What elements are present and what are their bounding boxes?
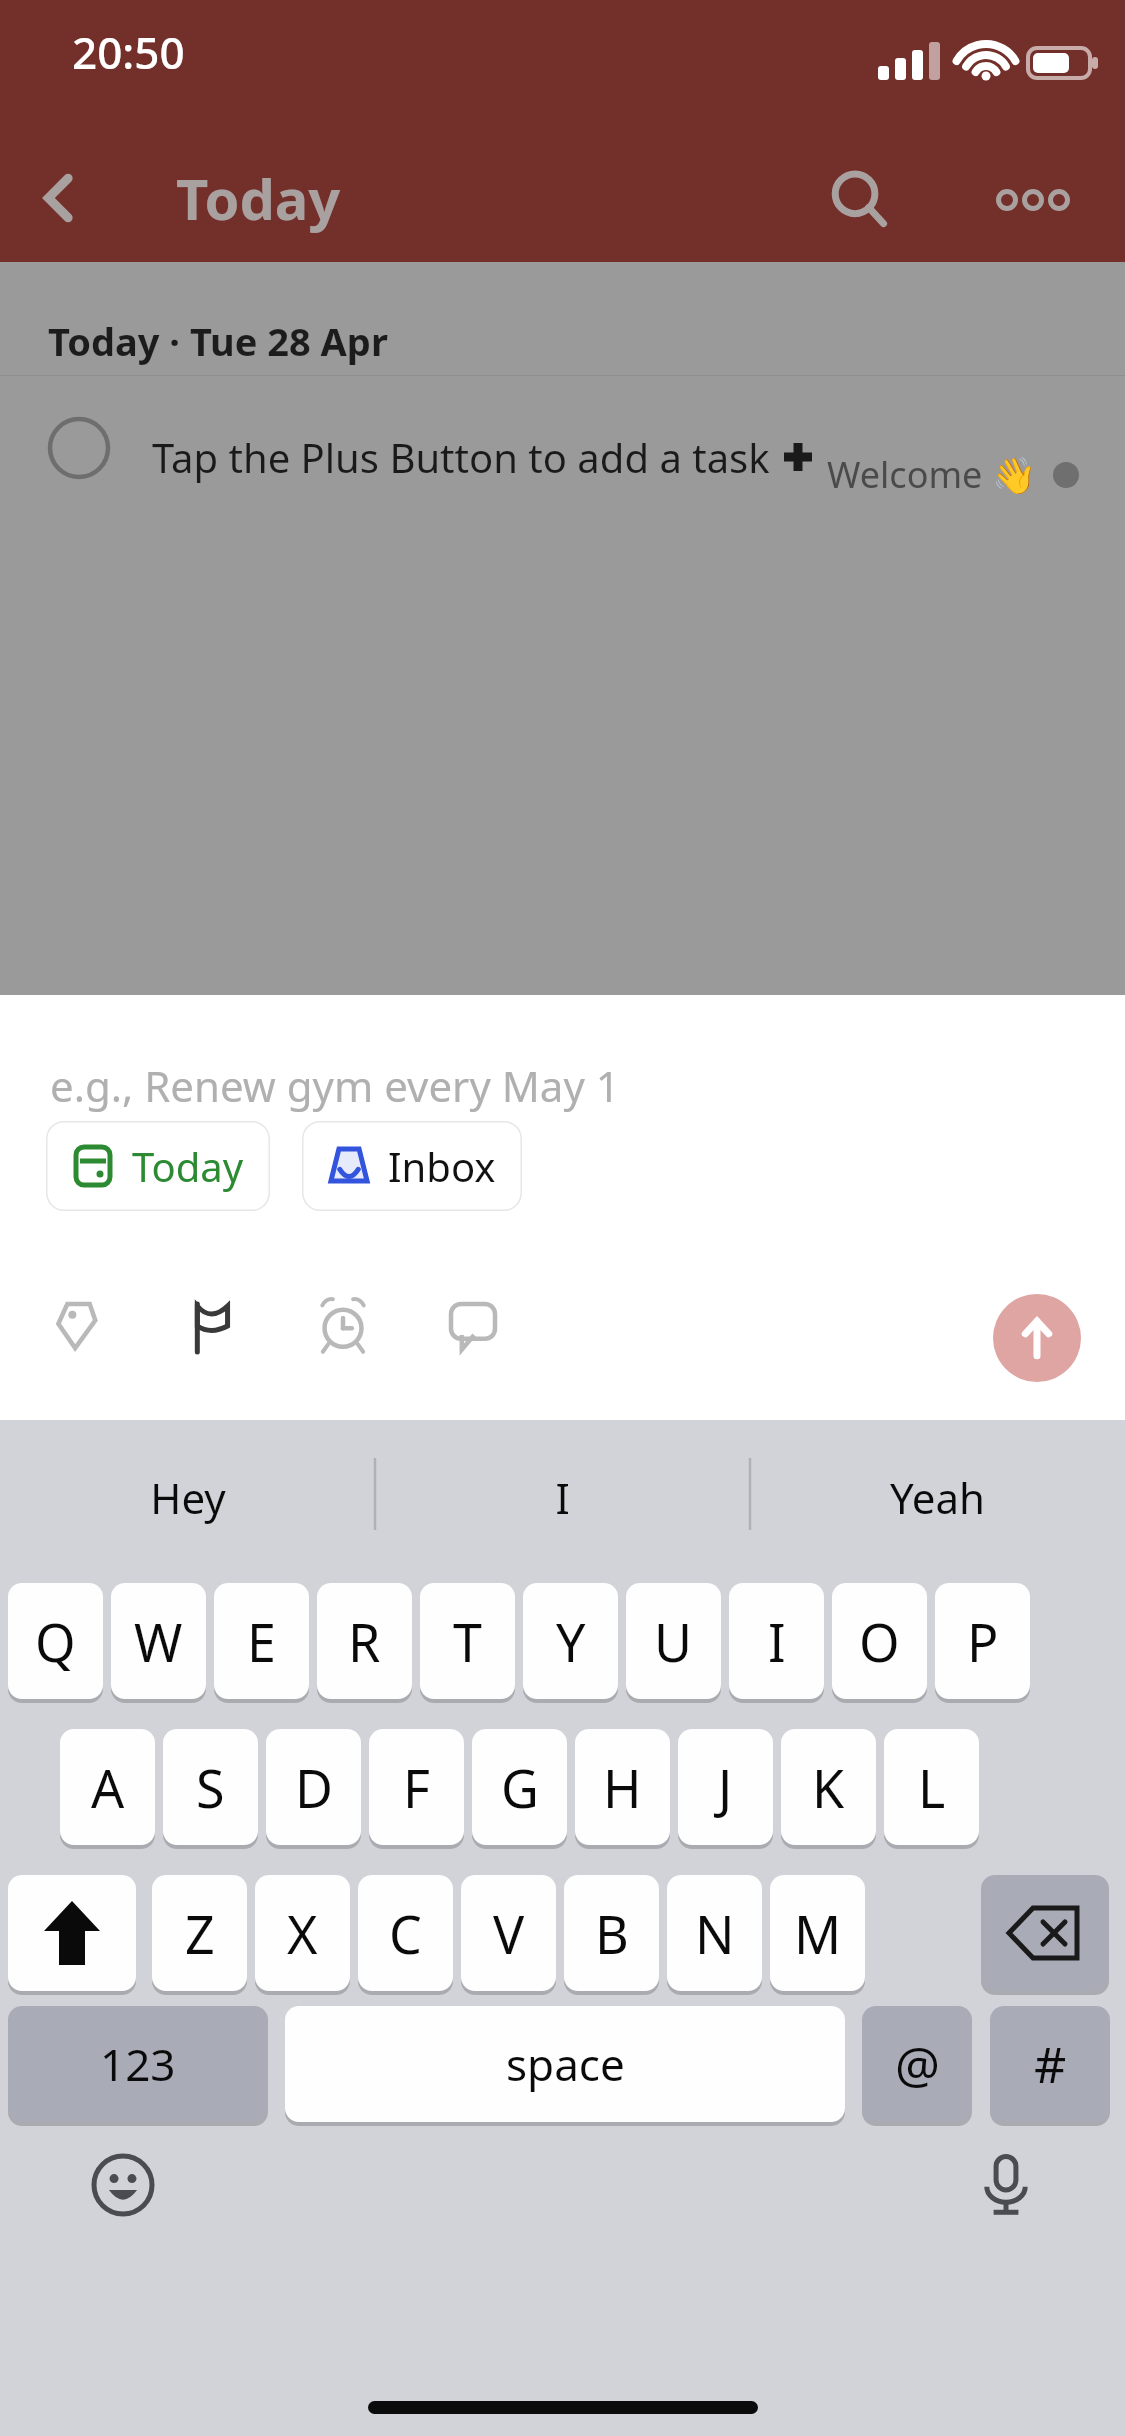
- button[interactable]: U: [626, 1583, 721, 1699]
- staticText: G: [501, 1752, 539, 1823]
- button[interactable]: Comment: [430, 1283, 516, 1369]
- button[interactable]: Labels: [40, 1283, 126, 1369]
- button[interactable]: N: [667, 1875, 762, 1991]
- staticText: Yeah: [890, 1469, 985, 1526]
- staticText: #: [1034, 2030, 1067, 2098]
- button[interactable]: #: [990, 2006, 1110, 2122]
- button[interactable]: Tap the Plus Button to add a task: [0, 375, 1125, 555]
- button[interactable]: Z: [152, 1875, 247, 1991]
- button[interactable]: Y: [523, 1583, 618, 1699]
- button[interactable]: Yeah: [750, 1420, 1125, 1575]
- button[interactable]: 123: [8, 2006, 268, 2122]
- staticText: Welcome 👋: [827, 450, 1037, 499]
- button[interactable]: P: [935, 1583, 1030, 1699]
- button[interactable]: K: [781, 1729, 876, 1845]
- button[interactable]: More options: [985, 152, 1081, 248]
- button[interactable]: E: [214, 1583, 309, 1699]
- staticText: Inbox: [388, 1139, 496, 1193]
- button[interactable]: V: [461, 1875, 556, 1991]
- staticText: E: [247, 1606, 276, 1677]
- staticText: Z: [185, 1898, 215, 1969]
- staticText: J: [718, 1752, 733, 1823]
- staticText: V: [493, 1898, 525, 1969]
- button[interactable]: I: [375, 1420, 750, 1575]
- staticText: Today · Tue 28 Apr: [48, 315, 388, 367]
- staticText: B: [595, 1898, 629, 1969]
- staticText: Tap the Plus Button to add a task: [152, 430, 781, 484]
- button[interactable]: Search: [812, 152, 908, 248]
- button[interactable]: W: [111, 1583, 206, 1699]
- staticText: A: [91, 1752, 125, 1823]
- button[interactable]: Emoji: [80, 2142, 166, 2228]
- staticText: space: [506, 2034, 625, 2094]
- button[interactable]: Shift: [8, 1875, 136, 1991]
- button[interactable]: Q: [8, 1583, 103, 1699]
- staticText: I: [768, 1606, 786, 1677]
- staticText: 123: [100, 2034, 176, 2094]
- button[interactable]: D: [266, 1729, 361, 1845]
- button[interactable]: H: [575, 1729, 670, 1845]
- staticText: M: [794, 1898, 842, 1969]
- button[interactable]: Backspace: [981, 1875, 1109, 1991]
- staticText: 20:50: [72, 22, 185, 82]
- staticText: U: [654, 1606, 693, 1677]
- button[interactable]: Back: [12, 150, 108, 246]
- button[interactable]: space: [285, 2006, 845, 2122]
- staticText: O: [859, 1606, 900, 1677]
- staticText: Today: [132, 1139, 244, 1193]
- staticText: Hey: [150, 1469, 226, 1526]
- button[interactable]: O: [832, 1583, 927, 1699]
- button[interactable]: @: [862, 2006, 972, 2122]
- button[interactable]: A: [60, 1729, 155, 1845]
- staticText: e.g., Renew gym every May 1: [50, 1057, 620, 1114]
- button[interactable]: G: [472, 1729, 567, 1845]
- staticText: K: [812, 1752, 845, 1823]
- button[interactable]: M: [770, 1875, 865, 1991]
- staticText: @: [895, 2030, 940, 2098]
- button[interactable]: F: [369, 1729, 464, 1845]
- staticText: I: [555, 1469, 570, 1526]
- staticText: T: [453, 1606, 482, 1677]
- staticText: P: [967, 1606, 999, 1677]
- staticText: X: [287, 1898, 318, 1969]
- staticText: Today: [176, 160, 341, 236]
- button[interactable]: C: [358, 1875, 453, 1991]
- button[interactable]: Reminder: [300, 1283, 386, 1369]
- staticText: W: [134, 1606, 183, 1677]
- staticText: N: [695, 1898, 735, 1969]
- button[interactable]: T: [420, 1583, 515, 1699]
- staticText: S: [196, 1752, 225, 1823]
- button[interactable]: B: [564, 1875, 659, 1991]
- staticText: Y: [556, 1606, 586, 1677]
- button[interactable]: Hey: [0, 1420, 375, 1575]
- button[interactable]: Today: [46, 1121, 270, 1211]
- button[interactable]: X: [255, 1875, 350, 1991]
- staticText: D: [295, 1752, 333, 1823]
- button[interactable]: S: [163, 1729, 258, 1845]
- button[interactable]: Add task: [993, 1294, 1081, 1382]
- button[interactable]: R: [317, 1583, 412, 1699]
- button[interactable]: Priority: [170, 1283, 256, 1369]
- button[interactable]: L: [884, 1729, 979, 1845]
- staticText: C: [389, 1898, 422, 1969]
- staticText: R: [348, 1606, 381, 1677]
- staticText: L: [918, 1752, 946, 1823]
- staticText: F: [403, 1752, 430, 1823]
- button[interactable]: Inbox: [302, 1121, 522, 1211]
- button[interactable]: Voice input: [963, 2142, 1049, 2228]
- staticText: H: [603, 1752, 642, 1823]
- staticText: Q: [35, 1606, 76, 1677]
- button[interactable]: I: [729, 1583, 824, 1699]
- button[interactable]: J: [678, 1729, 773, 1845]
